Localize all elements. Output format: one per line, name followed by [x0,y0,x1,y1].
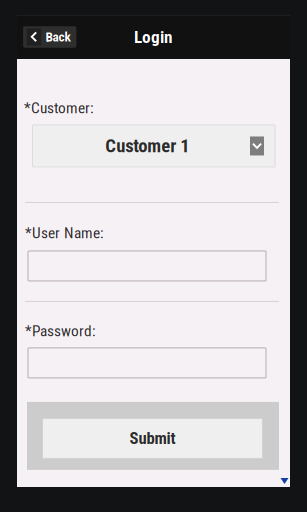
button[interactable]: Customer 1 [17,125,290,167]
staticText: *Password: [25,322,96,340]
staticText: Back [46,29,71,45]
staticText: Login [134,27,173,47]
button[interactable]: Back [23,26,76,48]
staticText: *Customer: [24,99,94,117]
staticText: Customer 1 [105,135,189,157]
staticText: *User Name: [25,224,104,242]
staticText: Submit [129,429,175,448]
button[interactable]: Submit [42,418,262,458]
